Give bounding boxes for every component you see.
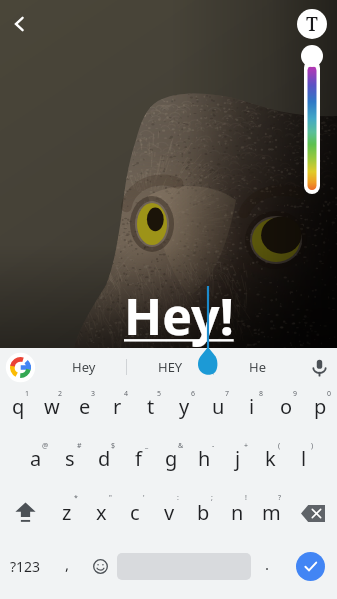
staticText: n	[231, 499, 244, 526]
staticText: '	[143, 493, 145, 503]
button[interactable]: q	[2, 386, 35, 438]
staticText: u	[212, 393, 225, 420]
staticText: He	[249, 358, 266, 376]
staticText: !	[245, 493, 247, 503]
staticText: 0	[327, 389, 332, 399]
button[interactable]: Voice input	[301, 348, 337, 386]
staticText: k	[265, 445, 276, 472]
staticText: 1	[25, 389, 30, 399]
button[interactable]: e	[68, 386, 101, 438]
button[interactable]: r	[101, 386, 134, 438]
button[interactable]: p	[303, 386, 337, 438]
button[interactable]: t	[134, 386, 167, 438]
staticText: ?	[278, 493, 282, 503]
staticText: s	[65, 445, 75, 472]
button[interactable]: g	[155, 438, 188, 490]
staticText: a	[30, 445, 42, 472]
staticText: t	[147, 393, 155, 420]
staticText: -	[212, 441, 215, 451]
button[interactable]: i	[235, 386, 269, 438]
button[interactable]: m	[254, 490, 288, 546]
staticText: 5	[157, 389, 162, 399]
button[interactable]: Color picker	[300, 44, 324, 196]
staticText: +	[244, 441, 249, 451]
button[interactable]: h	[188, 438, 221, 490]
staticText: b	[197, 499, 210, 526]
staticText: j	[235, 445, 241, 472]
button[interactable]: Text style	[297, 9, 327, 39]
staticText: "	[109, 493, 112, 503]
button[interactable]: Enter	[283, 540, 337, 593]
button[interactable]: b	[186, 490, 220, 546]
button[interactable]: l	[287, 438, 320, 490]
staticText: r	[113, 393, 122, 420]
staticText: 9	[293, 389, 298, 399]
staticText: :	[177, 493, 179, 503]
staticText: _	[145, 441, 149, 451]
staticText: f	[135, 445, 142, 472]
staticText: #	[77, 441, 82, 451]
button[interactable]: f	[121, 438, 155, 490]
button[interactable]: a	[19, 438, 53, 490]
staticText: q	[12, 393, 25, 420]
button[interactable]: v	[152, 490, 186, 546]
staticText: c	[130, 499, 140, 526]
staticText: 4	[124, 389, 129, 399]
staticText: )	[311, 441, 314, 451]
button[interactable]: c	[118, 490, 152, 546]
staticText: HEY	[158, 358, 183, 376]
staticText: *	[74, 493, 78, 503]
staticText: ;	[211, 493, 213, 503]
button[interactable]: y	[167, 386, 201, 438]
staticText: (	[278, 441, 281, 451]
button[interactable]: ,	[51, 540, 83, 593]
staticText: x	[96, 499, 107, 526]
staticText: z	[62, 499, 72, 526]
button[interactable]: k	[254, 438, 287, 490]
staticText: ?123	[10, 557, 41, 576]
staticText: p	[314, 393, 327, 420]
staticText: $	[111, 441, 116, 451]
button[interactable]: Back	[2, 7, 36, 41]
staticText: 8	[259, 389, 264, 399]
staticText: T	[306, 11, 318, 37]
staticText: 3	[91, 389, 96, 399]
button[interactable]: Emoji	[83, 540, 117, 593]
staticText: e	[79, 393, 91, 420]
staticText: &	[178, 441, 184, 451]
staticText: l	[301, 445, 307, 472]
staticText: Hey	[72, 358, 96, 376]
button[interactable]: j	[221, 438, 254, 490]
staticText: h	[198, 445, 211, 472]
button[interactable]: .	[251, 540, 283, 593]
staticText: i	[249, 393, 255, 420]
staticText: o	[280, 393, 293, 420]
staticText: ,	[65, 554, 70, 574]
button[interactable]: s	[53, 438, 87, 490]
button[interactable]: He	[214, 348, 301, 386]
button[interactable]: Backspace	[288, 490, 337, 546]
staticText: m	[262, 499, 281, 526]
staticText: d	[98, 445, 111, 472]
button[interactable]: z	[50, 490, 84, 546]
button[interactable]: ?123	[0, 540, 51, 593]
button[interactable]: u	[201, 386, 235, 438]
button[interactable]: d	[87, 438, 121, 490]
staticText: @	[42, 441, 49, 451]
button[interactable]: HEY	[127, 348, 214, 386]
staticText: .	[265, 554, 270, 574]
staticText: v	[164, 499, 175, 526]
button[interactable]: w	[35, 386, 68, 438]
staticText: y	[179, 393, 190, 420]
button[interactable]: Shift	[0, 490, 50, 546]
button[interactable]: Google Assistant	[0, 348, 40, 386]
button[interactable]: n	[220, 490, 254, 546]
button[interactable]: x	[84, 490, 118, 546]
button[interactable]: Hey	[40, 348, 127, 386]
staticText: 6	[191, 389, 196, 399]
staticText: w	[44, 393, 60, 420]
button[interactable]: Space	[117, 540, 251, 593]
staticText: g	[165, 445, 178, 472]
button[interactable]: o	[269, 386, 303, 438]
staticText: 2	[58, 389, 63, 399]
